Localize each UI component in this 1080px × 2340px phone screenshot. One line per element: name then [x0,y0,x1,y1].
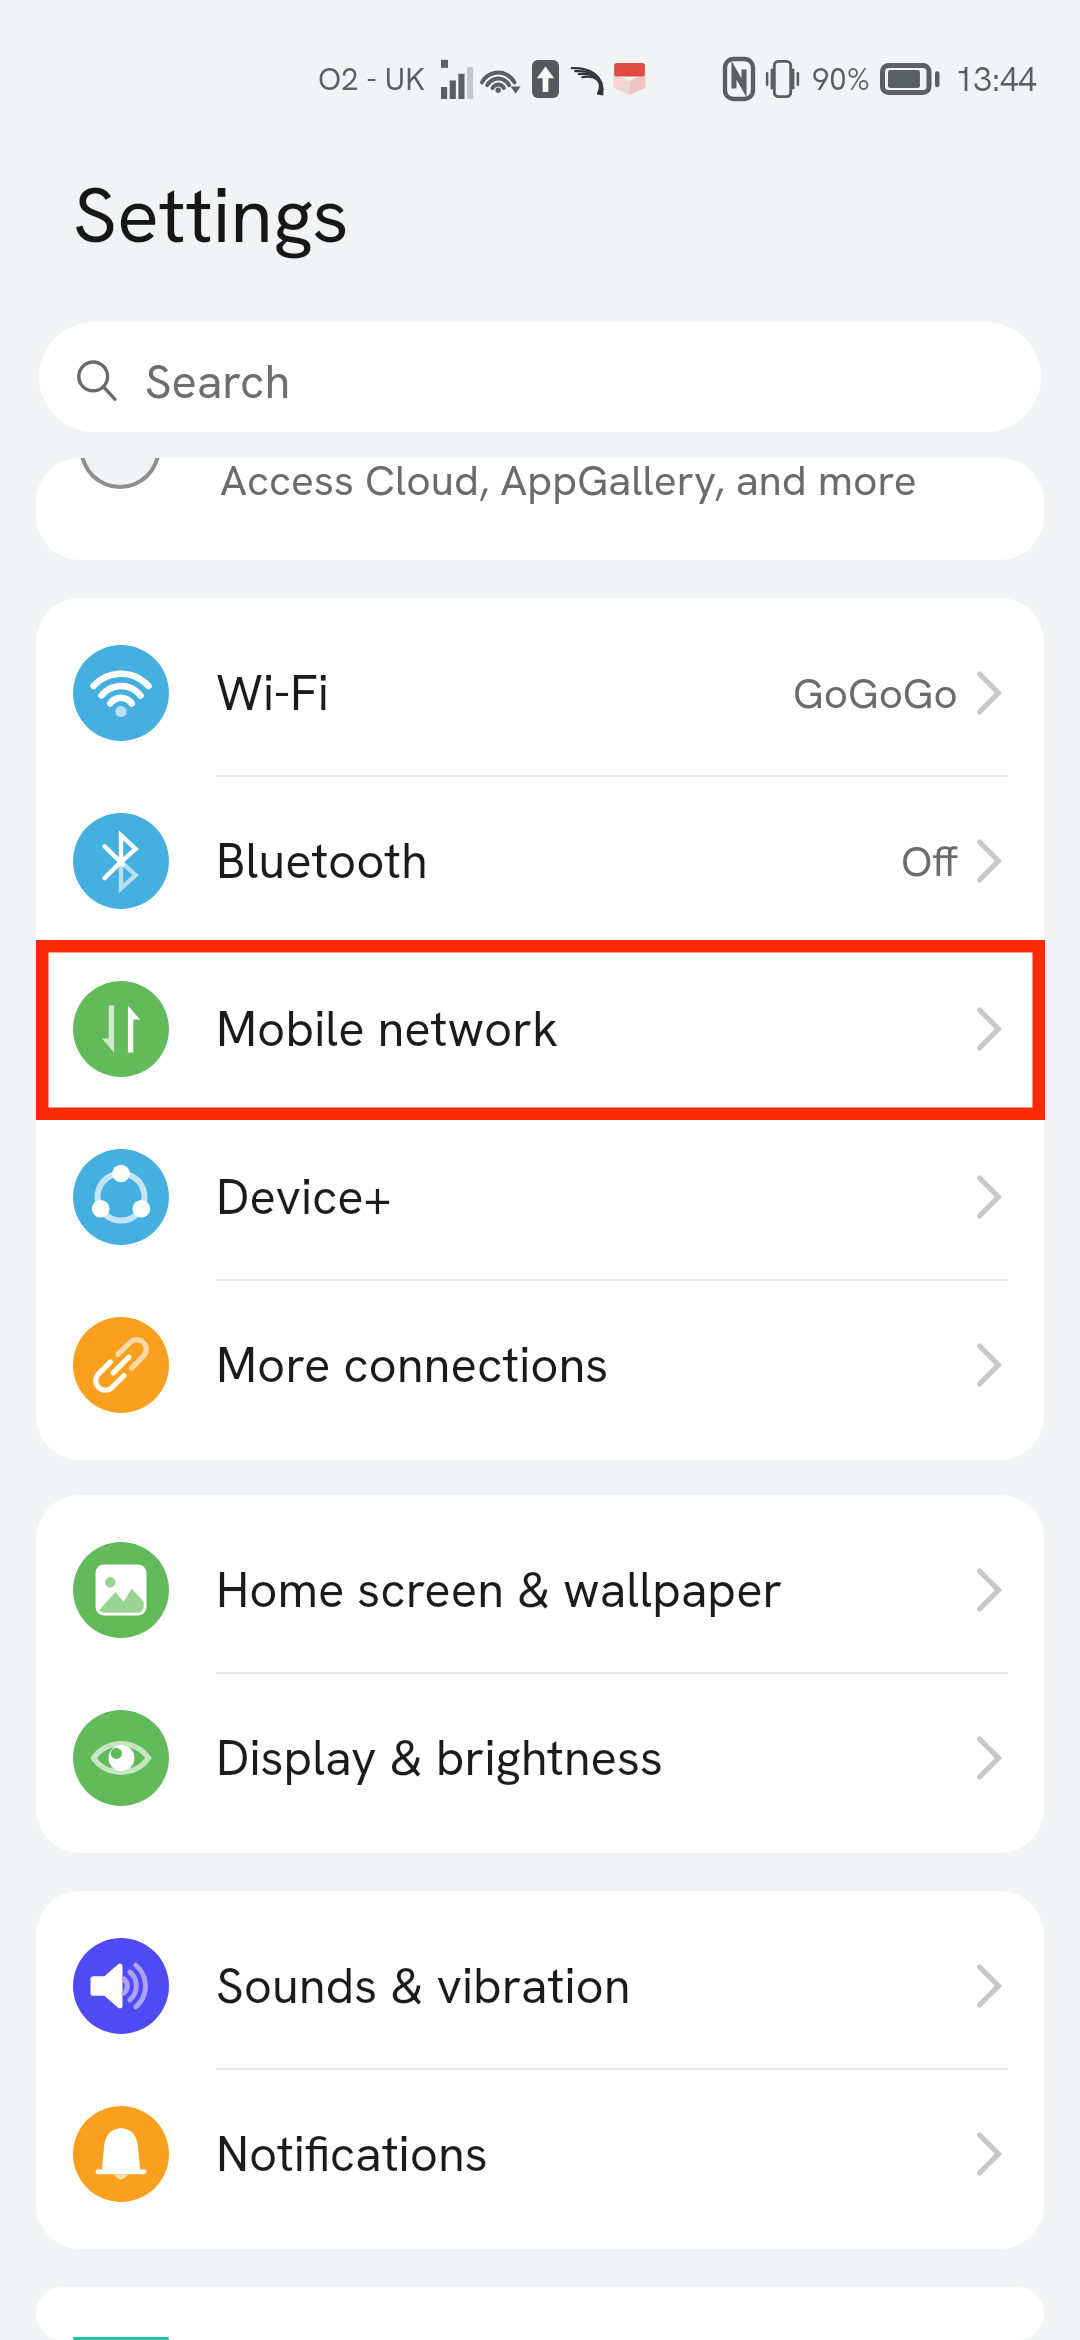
button[interactable]: Notifications [36,2070,1044,2238]
staticText: O2 - UK [318,59,425,99]
button[interactable]: Access Cloud, AppGallery, and more [36,458,1044,560]
staticText: Settings [73,164,349,266]
button[interactable]: Sounds & vibration [36,1902,1044,2070]
button[interactable]: Search [39,322,1041,432]
staticText: Display & brightness [216,1726,978,1790]
staticText: Notifications [216,2122,978,2186]
staticText: Home screen & wallpaper [216,1558,978,1622]
button[interactable]: Display & brightness [36,1674,1044,1842]
staticText: Bluetooth [216,829,901,893]
staticText: Access Cloud, AppGallery, and more [220,458,917,507]
button[interactable]: Bluetooth [36,777,1044,945]
staticText: Sounds & vibration [216,1954,978,2018]
button[interactable]: Mobile network [36,945,1044,1113]
staticText: Mobile network [216,997,978,1061]
other: Mobile network highlighted [36,940,1045,1120]
button[interactable]: Home screen & wallpaper [36,1506,1044,1674]
staticText: Device+ [216,1165,978,1229]
staticText: Off [901,834,958,889]
staticText: GoGoGo [793,666,958,721]
button[interactable]: Device+ [36,1113,1044,1281]
button[interactable]: Wi-Fi [36,609,1044,777]
staticText: Wi-Fi [216,661,793,725]
staticText: 13:44 [955,58,1037,101]
staticText: 90% [812,59,870,99]
button[interactable]: More connections [36,1281,1044,1449]
staticText: More connections [216,1333,978,1397]
staticText: Search [145,351,291,412]
